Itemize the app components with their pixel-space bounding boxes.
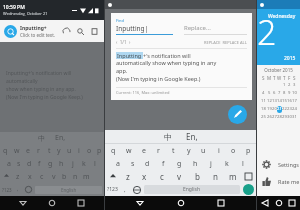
button[interactable]: Edit: [228, 105, 247, 124]
button[interactable]: ?123: [107, 186, 118, 193]
button[interactable]: Change language: [133, 186, 141, 194]
button[interactable]: j: [67, 157, 78, 170]
button[interactable]: Backspace: [242, 170, 255, 183]
button[interactable]: w: [11, 144, 22, 157]
button[interactable]: 24: [292, 105, 297, 113]
button[interactable]: Search: [75, 26, 86, 37]
button[interactable]: l: [89, 157, 100, 170]
button[interactable]: Enter: [243, 184, 254, 195]
button[interactable]: 18: [260, 105, 266, 113]
button[interactable]: 28: [277, 113, 282, 121]
button[interactable]: a: [4, 157, 14, 170]
button[interactable]: 13: [272, 97, 277, 105]
button[interactable]: m: [224, 170, 242, 183]
button[interactable]: 8: [282, 89, 287, 97]
button[interactable]: n: [70, 170, 81, 183]
button[interactable]: 14: [277, 97, 282, 105]
button[interactable]: x: [24, 170, 36, 183]
button[interactable]: k: [219, 157, 235, 170]
button[interactable]: b: [188, 170, 206, 183]
button[interactable]: 1: [282, 81, 287, 89]
button[interactable]: k: [78, 157, 89, 170]
button[interactable]: e: [136, 144, 151, 157]
button[interactable]: v: [170, 170, 188, 183]
button[interactable]: 4: [260, 89, 266, 97]
button[interactable]: Home: [175, 197, 187, 209]
button[interactable]: x: [136, 170, 153, 183]
button[interactable]: p: [94, 144, 104, 157]
button[interactable]: 22: [282, 105, 287, 113]
button[interactable]: English: [35, 186, 102, 194]
button[interactable]: 9: [287, 89, 292, 97]
button[interactable]: i: [74, 144, 84, 157]
button[interactable]: 15: [282, 97, 287, 105]
button[interactable]: English: [144, 185, 240, 194]
button[interactable]: Rate me: [257, 173, 300, 190]
button[interactable]: 27: [272, 113, 277, 121]
button[interactable]: Recents: [215, 197, 227, 209]
button[interactable]: Shift: [106, 170, 119, 183]
button[interactable]: 19: [266, 105, 272, 113]
button[interactable]: y: [54, 144, 64, 157]
button[interactable]: 29: [282, 113, 287, 121]
button[interactable]: 16: [287, 97, 292, 105]
button[interactable]: Shift: [1, 170, 12, 183]
button[interactable]: o: [226, 144, 241, 157]
button[interactable]: z: [12, 170, 24, 183]
button[interactable]: t: [166, 144, 181, 157]
button[interactable]: v: [48, 170, 59, 183]
button[interactable]: 2: [287, 81, 292, 89]
button[interactable]: Recents: [286, 197, 298, 209]
button[interactable]: f: [34, 157, 45, 170]
button[interactable]: t: [44, 144, 54, 157]
button[interactable]: ?123: [2, 187, 12, 193]
button[interactable]: Back: [134, 197, 146, 209]
button[interactable]: s: [125, 157, 140, 170]
button[interactable]: u: [64, 144, 74, 157]
button[interactable]: Undo: [61, 26, 72, 37]
button[interactable]: 21: [277, 105, 282, 113]
button[interactable]: Back: [17, 197, 29, 209]
button[interactable]: d: [140, 157, 155, 170]
button[interactable]: e: [22, 144, 33, 157]
button[interactable]: 5: [266, 89, 272, 97]
button[interactable]: h: [187, 157, 203, 170]
button[interactable]: m: [81, 170, 92, 183]
button[interactable]: 26: [266, 113, 272, 121]
button[interactable]: l: [235, 157, 251, 170]
button[interactable]: r: [33, 144, 44, 157]
button[interactable]: p: [241, 144, 256, 157]
button[interactable]: d: [24, 157, 34, 170]
button[interactable]: Language: [25, 186, 32, 193]
button[interactable]: u: [196, 144, 211, 157]
button[interactable]: Recents: [75, 197, 87, 209]
button[interactable]: 6: [272, 89, 277, 97]
button[interactable]: z: [119, 170, 136, 183]
button[interactable]: w: [121, 144, 136, 157]
button[interactable]: i: [211, 144, 226, 157]
button[interactable]: 30: [287, 113, 292, 121]
button[interactable]: Home: [273, 197, 285, 209]
button[interactable]: r: [151, 144, 166, 157]
button[interactable]: Home: [46, 197, 58, 209]
button[interactable]: 7: [277, 89, 282, 97]
button[interactable]: a: [110, 157, 125, 170]
button[interactable]: 31: [292, 113, 297, 121]
button[interactable]: 3: [292, 81, 297, 89]
button[interactable]: b: [59, 170, 70, 183]
button[interactable]: Settings: [257, 156, 300, 173]
button[interactable]: 12: [266, 97, 272, 105]
button[interactable]: 11: [260, 97, 266, 105]
button[interactable]: s: [14, 157, 24, 170]
button[interactable]: 25: [260, 113, 266, 121]
button[interactable]: g: [171, 157, 187, 170]
button[interactable]: c: [36, 170, 48, 183]
button[interactable]: 23: [287, 105, 292, 113]
button[interactable]: g: [45, 157, 56, 170]
button[interactable]: 17: [292, 97, 297, 105]
button[interactable]: q: [105, 144, 121, 157]
